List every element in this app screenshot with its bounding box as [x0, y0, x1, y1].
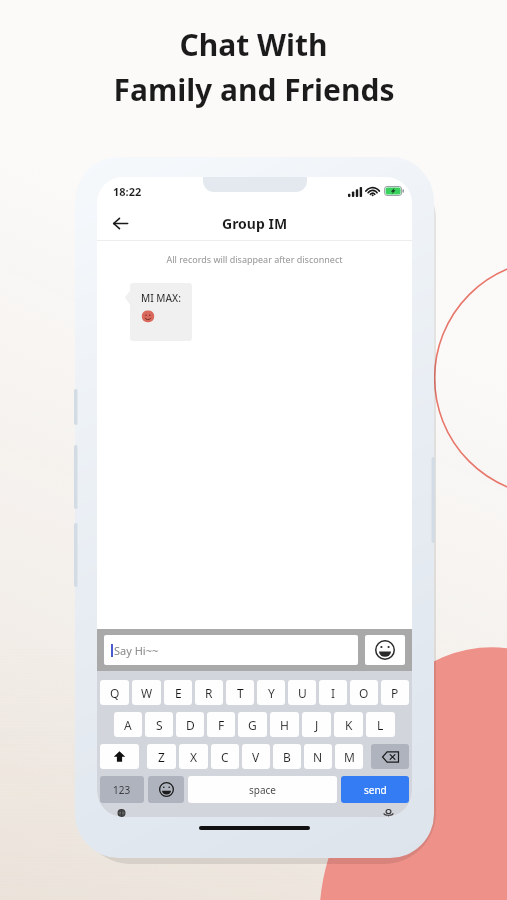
button[interactable]: Emoji: [365, 635, 405, 665]
button[interactable]: J: [302, 712, 331, 737]
staticText: F: [218, 717, 225, 733]
button[interactable]: X: [179, 744, 208, 769]
staticText: W: [141, 685, 153, 701]
staticText: Group IM: [222, 214, 288, 233]
staticText: MI MAX:: [141, 291, 181, 305]
button[interactable]: V: [242, 744, 270, 769]
staticText: send: [364, 783, 387, 797]
button[interactable]: W: [132, 680, 161, 705]
button[interactable]: P: [381, 680, 409, 705]
staticText: B: [283, 749, 291, 765]
button[interactable]: Z: [147, 744, 176, 769]
button[interactable]: G: [238, 712, 267, 737]
button[interactable]: MI MAX:: [130, 283, 192, 341]
button[interactable]: Voice input: [377, 809, 399, 817]
button[interactable]: F: [207, 712, 235, 737]
staticText: Y: [268, 685, 275, 701]
button[interactable]: R: [195, 680, 223, 705]
staticText: N: [313, 749, 323, 765]
staticText: Family and Friends: [113, 69, 395, 110]
staticText: U: [298, 685, 307, 701]
button[interactable]: Say Hi~~: [104, 635, 358, 665]
staticText: space: [249, 783, 276, 797]
button[interactable]: U: [288, 680, 316, 705]
button[interactable]: B: [273, 744, 301, 769]
button[interactable]: N: [304, 744, 332, 769]
staticText: R: [205, 685, 213, 701]
staticText: E: [175, 685, 182, 701]
button[interactable]: space: [188, 776, 337, 803]
staticText: I: [331, 685, 336, 701]
button[interactable]: Backspace: [371, 744, 409, 769]
staticText: Chat With: [179, 24, 328, 65]
button[interactable]: Change keyboard language: [110, 809, 132, 817]
button[interactable]: 123: [100, 776, 144, 803]
button[interactable]: H: [270, 712, 299, 737]
staticText: T: [237, 685, 244, 701]
staticText: Z: [158, 749, 165, 765]
button[interactable]: E: [164, 680, 192, 705]
staticText: X: [190, 749, 198, 765]
button[interactable]: D: [176, 712, 204, 737]
staticText: S: [156, 717, 163, 733]
button[interactable]: S: [145, 712, 173, 737]
staticText: D: [186, 717, 195, 733]
staticText: G: [248, 717, 257, 733]
staticText: L: [377, 717, 384, 733]
staticText: 18:22: [113, 184, 142, 199]
button[interactable]: Emoji keyboard: [148, 776, 184, 803]
staticText: V: [252, 749, 260, 765]
button[interactable]: I: [319, 680, 347, 705]
button[interactable]: O: [350, 680, 378, 705]
staticText: P: [391, 685, 399, 701]
button[interactable]: Back: [103, 206, 137, 240]
staticText: All records will disappear after disconn…: [97, 253, 412, 265]
button[interactable]: L: [366, 712, 395, 737]
button[interactable]: T: [226, 680, 254, 705]
staticText: M: [344, 749, 355, 765]
button[interactable]: K: [334, 712, 363, 737]
button[interactable]: Y: [257, 680, 285, 705]
staticText: H: [280, 717, 289, 733]
button[interactable]: Q: [100, 680, 129, 705]
button[interactable]: Shift: [100, 744, 139, 769]
staticText: A: [124, 717, 132, 733]
staticText: Say Hi~~: [114, 643, 159, 658]
button[interactable]: C: [211, 744, 239, 769]
staticText: J: [315, 717, 319, 733]
staticText: K: [345, 717, 353, 733]
button[interactable]: A: [114, 712, 142, 737]
button[interactable]: M: [335, 744, 363, 769]
staticText: C: [221, 749, 229, 765]
button[interactable]: send: [341, 776, 409, 803]
staticText: 123: [113, 783, 131, 797]
staticText: O: [359, 685, 369, 701]
staticText: Q: [110, 685, 120, 701]
